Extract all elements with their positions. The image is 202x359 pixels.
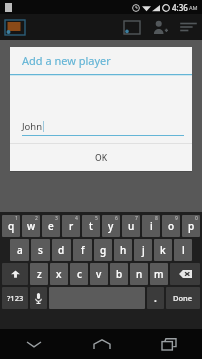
staticText: John [22,120,43,133]
staticText: 2 [35,215,38,222]
button[interactable]: o [162,215,180,237]
button[interactable]: Backspace [170,263,200,285]
staticText: l [182,243,185,257]
staticText: v [96,267,102,281]
button[interactable]: Recent apps [135,329,202,359]
staticText: p [188,219,195,233]
staticText: r [69,219,74,233]
button[interactable]: d [52,239,71,261]
button[interactable]: OK [10,144,192,171]
button[interactable]: p [182,215,200,237]
button[interactable]: x [50,263,68,285]
staticText: h [120,243,127,257]
staticText: ?123 [7,293,24,303]
button[interactable]: Cast [118,14,146,40]
staticText: a [17,243,23,257]
button[interactable]: a [10,239,29,261]
button[interactable]: n [130,263,148,285]
button[interactable]: v [90,263,108,285]
button[interactable]: b [110,263,128,285]
staticText: 6 [115,215,118,222]
staticText: t [89,219,93,233]
button[interactable]: Done [166,287,200,309]
staticText: u [128,219,135,233]
staticText: j [142,243,145,257]
staticText: 9 [175,215,178,222]
button[interactable]: Cast app logo [0,14,30,40]
staticText: x [56,267,62,281]
staticText: 1 [15,215,18,222]
staticText: e [48,219,54,233]
button[interactable]: k [154,239,172,261]
button[interactable]: z [30,263,48,285]
staticText: z [37,267,42,281]
button[interactable]: w [22,215,40,237]
staticText: Done [173,293,193,303]
staticText: 8 [155,215,158,222]
button[interactable]: Sort [174,14,202,40]
button[interactable]: c [70,263,88,285]
button[interactable]: y [102,215,120,237]
button[interactable]: m [150,263,168,285]
button[interactable]: Voice input [30,287,47,309]
staticText: 5 [95,215,98,222]
staticText: 3 [55,215,58,222]
staticText: m [154,267,164,281]
button[interactable]: u [122,215,140,237]
button[interactable]: ?123 [2,287,28,309]
staticText: w [27,219,36,233]
staticText: d [58,243,65,257]
staticText: s [38,243,43,257]
button[interactable]: Back [0,329,68,359]
staticText: Add a new player [22,53,111,68]
staticText: o [168,219,175,233]
button[interactable]: t [82,215,100,237]
button[interactable]: Add player [146,14,174,40]
staticText: 4:36 [172,2,188,13]
staticText: . [154,291,157,305]
button[interactable]: i [142,215,160,237]
button[interactable]: j [134,239,152,261]
button[interactable]: r [62,215,80,237]
button[interactable]: q [2,215,20,237]
staticText: y [108,219,114,233]
button[interactable]: Shift [2,263,28,285]
staticText: AM [189,4,198,11]
staticText: f [81,243,85,257]
staticText: i [150,219,153,233]
button[interactable]: l [174,239,192,261]
staticText: g [100,243,107,257]
staticText: c [77,267,82,281]
staticText: 7 [135,215,138,222]
button[interactable]: h [114,239,132,261]
staticText: q [8,219,15,233]
staticText: 0 [195,215,198,222]
staticText: OK [95,152,108,164]
staticText: n [136,267,143,281]
staticText: b [116,267,123,281]
staticText: k [160,243,166,257]
button[interactable]: e [42,215,60,237]
button[interactable]: f [73,239,92,261]
staticText: 4 [75,215,78,222]
button[interactable]: s [31,239,50,261]
button[interactable]: g [94,239,112,261]
button[interactable]: . [147,287,164,309]
button[interactable]: Home [68,329,135,359]
